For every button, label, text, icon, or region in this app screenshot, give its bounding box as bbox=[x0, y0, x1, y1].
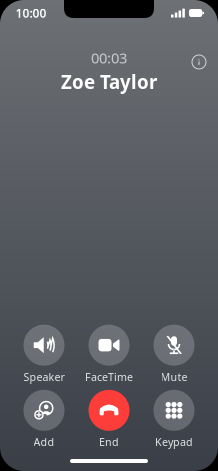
staticText: Speaker bbox=[23, 370, 64, 384]
staticText: Mute bbox=[160, 370, 187, 384]
button[interactable]: Keypad bbox=[143, 390, 205, 449]
staticText: Keypad bbox=[155, 435, 193, 449]
button[interactable]: Add call bbox=[13, 390, 75, 449]
staticText: Add bbox=[33, 435, 54, 449]
staticText: End bbox=[99, 435, 119, 449]
staticText: FaceTime bbox=[85, 370, 133, 384]
staticText: Zoe Taylor bbox=[61, 69, 157, 94]
button[interactable]: End call bbox=[78, 390, 140, 449]
button[interactable]: FaceTime bbox=[78, 325, 140, 384]
button[interactable]: Speaker bbox=[13, 325, 75, 384]
staticText: 00:03 bbox=[91, 48, 127, 67]
staticText: 10:00 bbox=[15, 5, 46, 21]
button[interactable]: Mute bbox=[143, 325, 205, 384]
button[interactable]: Call info bbox=[184, 47, 214, 77]
